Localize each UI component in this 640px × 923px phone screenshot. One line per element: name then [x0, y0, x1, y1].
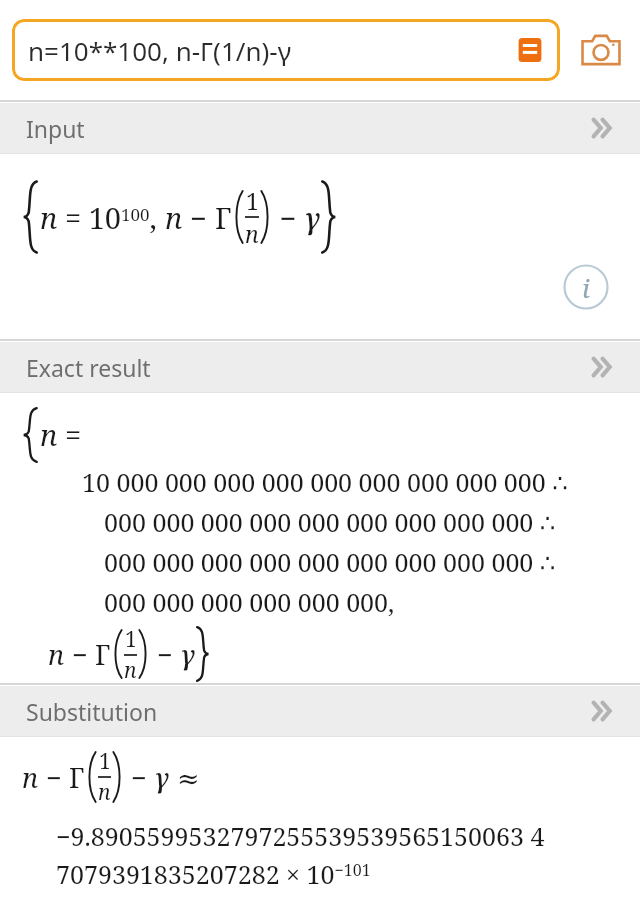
staticText: n [98, 778, 111, 807]
button[interactable]: Expand Exact result [580, 345, 624, 389]
staticText: 000 000 000 000 000 000, [104, 585, 395, 619]
staticText: 1 [125, 625, 137, 654]
staticText: n [245, 218, 259, 249]
staticText: γ [304, 198, 321, 237]
staticText: 1 [99, 747, 111, 776]
button[interactable]: n=10**100, n-Γ(1/n)-γ [12, 19, 560, 81]
staticText: 000 000 000 000 000 000 000 000 000 ∴ [104, 505, 556, 539]
staticText: Exact result [26, 352, 151, 383]
button[interactable]: n = 10100, [0, 154, 640, 339]
staticText: n [48, 636, 72, 673]
button[interactable]: Exact result [0, 342, 640, 392]
staticText: 7079391835207282 × 10−101 [56, 857, 371, 891]
staticText: γ [180, 636, 196, 673]
staticText: 1 [246, 185, 259, 216]
staticText: −9.8905599532797255539539565150063 4 [56, 819, 545, 853]
staticText: 000 000 000 000 000 000 000 000 000 ∴ [104, 545, 556, 579]
staticText: ≈ [170, 759, 200, 796]
staticText: − [150, 636, 180, 673]
button[interactable]: Camera input [574, 23, 628, 77]
staticText: − [272, 198, 304, 237]
staticText: Γ [215, 198, 232, 237]
staticText: − [46, 759, 69, 796]
staticText: Substitution [26, 696, 158, 727]
button[interactable]: Keyboard [510, 30, 550, 70]
button[interactable]: Input [0, 103, 640, 153]
button[interactable]: Substitution [0, 686, 640, 736]
staticText: i [582, 270, 590, 305]
staticText: − [124, 759, 154, 796]
button[interactable]: Expand Substitution [580, 689, 624, 733]
staticText: Input [26, 113, 85, 144]
staticText: − [190, 198, 215, 237]
staticText: 10 000 000 000 000 000 000 000 000 000 ∴ [82, 465, 569, 499]
staticText: n [22, 759, 46, 796]
staticText: Γ [95, 636, 111, 673]
staticText: n=10**100, n-Γ(1/n)-γ [28, 33, 292, 68]
staticText: n = [40, 415, 82, 454]
staticText: γ [154, 759, 170, 796]
staticText: n [165, 198, 190, 237]
staticText: n = 10100, [40, 198, 165, 237]
staticText: Γ [69, 759, 85, 796]
button[interactable]: More information [560, 261, 612, 313]
staticText: − [72, 636, 95, 673]
button[interactable]: n = [0, 393, 640, 683]
button[interactable]: n [0, 737, 640, 923]
button[interactable]: Expand Input [580, 106, 624, 150]
staticText: n [124, 656, 137, 683]
